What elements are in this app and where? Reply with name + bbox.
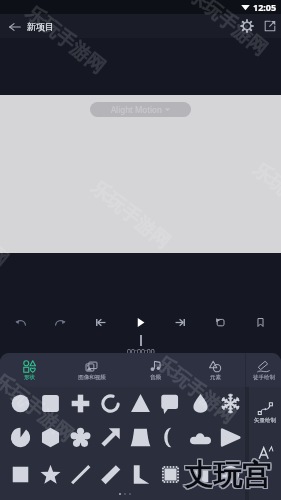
button[interactable]: Shape (5, 426, 35, 448)
staticText: 乐玩手游网 (21, 1, 110, 79)
button[interactable]: Loop (210, 312, 231, 333)
staticText: 矢量绘制 (254, 417, 276, 424)
button[interactable]: Undo (10, 312, 31, 333)
staticText: 丈玩宫 (185, 456, 272, 493)
button[interactable]: Export (260, 16, 280, 36)
button[interactable]: Settings (237, 16, 257, 36)
button[interactable]: Shape (155, 463, 185, 485)
button[interactable]: Shape (155, 426, 185, 448)
button[interactable]: Back (5, 17, 24, 36)
button[interactable]: Shape (65, 392, 95, 414)
button[interactable]: Shape (215, 392, 245, 414)
button[interactable]: 徒手绘制 (246, 353, 281, 387)
staticText: 12:05 (253, 1, 277, 13)
button[interactable]: Play (130, 312, 151, 333)
staticText: 丈玩宫 (183, 456, 270, 493)
staticText: 00:00:00 (127, 347, 155, 357)
button[interactable]: 音频 (125, 353, 185, 387)
button[interactable]: Shape (95, 392, 125, 414)
staticText: Alight Motion (111, 104, 162, 115)
button[interactable]: Shape (125, 463, 155, 485)
button[interactable]: 形状 (0, 353, 58, 387)
staticText: 音频 (150, 374, 161, 381)
staticText: 丈玩宫 (184, 458, 271, 495)
button[interactable]: 图像和视频 (58, 353, 125, 387)
button[interactable]: Redo (50, 312, 71, 333)
staticText: 丈玩宫 (185, 457, 272, 494)
button[interactable]: Shape (5, 392, 35, 414)
button[interactable]: Skip to end (170, 312, 191, 333)
button[interactable]: Shape (215, 426, 245, 448)
button[interactable]: Bookmark (250, 312, 271, 333)
button[interactable]: Shape (95, 426, 125, 448)
staticText: 丈玩宫 (183, 457, 270, 494)
button[interactable]: 元素 (185, 353, 245, 387)
staticText: 乐玩手游网 (0, 194, 13, 272)
button[interactable]: Shape (125, 426, 155, 448)
button[interactable]: Shape (65, 463, 95, 485)
staticText: 形状 (24, 374, 35, 381)
staticText: 乐玩手游网 (183, 0, 272, 61)
button[interactable]: Shape (125, 392, 155, 414)
button[interactable]: Shape (185, 463, 215, 485)
staticText: 丈玩宫 (184, 456, 271, 493)
staticText: 乐玩手游网 (0, 369, 78, 447)
button[interactable]: Shape (185, 392, 215, 414)
staticText: 图像和视频 (78, 374, 106, 381)
staticText: 元素 (210, 374, 221, 381)
staticText: 乐玩手游网 (86, 176, 175, 254)
button[interactable]: Shape (5, 463, 35, 485)
button[interactable]: Shape (65, 426, 95, 448)
button[interactable]: 矢量绘制 (249, 401, 281, 424)
staticText: 丈玩宫 (184, 457, 271, 494)
button[interactable]: Shape (95, 463, 125, 485)
button[interactable]: Shape (35, 426, 65, 448)
staticText: 丈玩宫 (183, 458, 270, 495)
staticText: 新项目 (27, 21, 54, 32)
button[interactable]: Shape (215, 463, 245, 485)
button[interactable]: 文本 (249, 446, 281, 469)
button[interactable]: Alight Motion (90, 102, 191, 117)
staticText: 徒手绘制 (253, 374, 275, 381)
button[interactable]: Skip to start (90, 312, 111, 333)
button[interactable]: Shape (155, 392, 185, 414)
staticText: 丈玩宫 (185, 458, 272, 495)
button[interactable]: Shape (35, 392, 65, 414)
staticText: 乐玩手游网 (151, 351, 240, 429)
button[interactable]: Shape (35, 463, 65, 485)
button[interactable]: Shape (185, 426, 215, 448)
staticText: 文本 (260, 462, 271, 469)
